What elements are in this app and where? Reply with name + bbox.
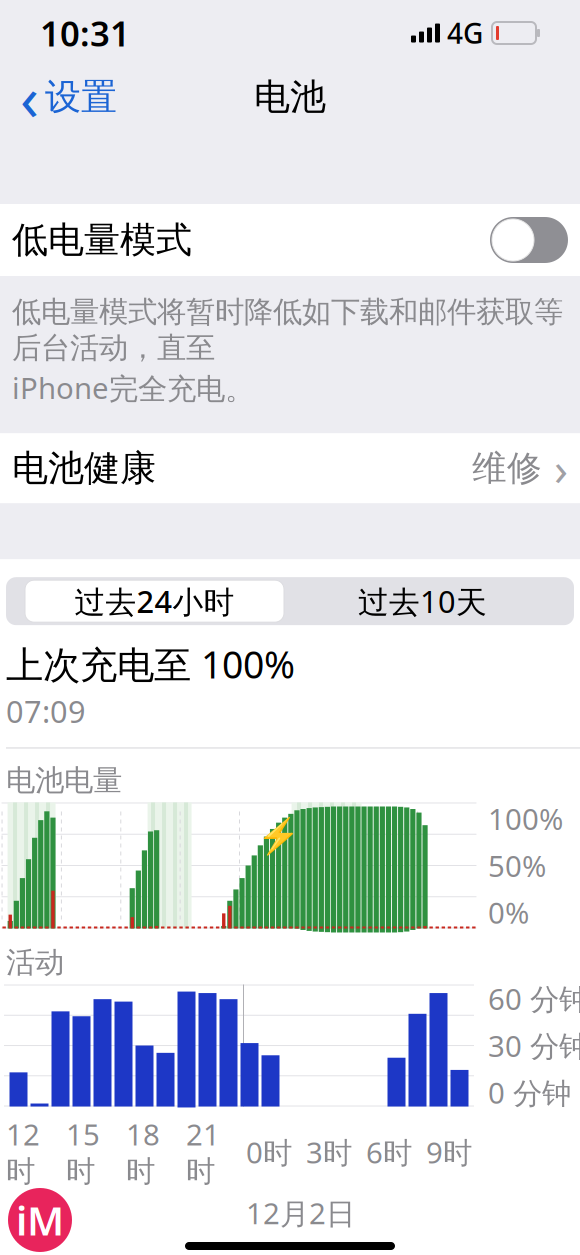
button[interactable]: 低电量模式 xyxy=(0,204,580,276)
staticText: 12时 xyxy=(6,1114,40,1189)
staticText: 0时 xyxy=(246,1132,292,1171)
staticText: 设置 xyxy=(45,75,117,119)
staticText: iM xyxy=(16,1193,64,1246)
staticText: 10:31 xyxy=(40,10,130,56)
staticText: 21时 xyxy=(186,1114,220,1189)
staticText: 低电量模式 xyxy=(12,218,192,262)
staticText: 0% xyxy=(488,893,529,932)
staticText: 12月2日 xyxy=(246,1193,355,1232)
staticText: 过去24小时 xyxy=(74,581,234,621)
staticText: 活动 xyxy=(6,944,64,980)
staticText: 0 分钟 xyxy=(488,1073,571,1112)
staticText: 电池电量 xyxy=(6,762,122,798)
staticText: 低电量模式将暂时降低如下载和邮件获取等后台活动，直至 xyxy=(12,294,563,366)
staticText: 100% xyxy=(488,799,563,838)
button[interactable]: ‹ xyxy=(0,50,117,144)
staticText: 4G xyxy=(447,14,483,52)
button[interactable]: 电池健康 xyxy=(0,433,580,503)
staticText: 30 分钟 xyxy=(488,1026,580,1065)
staticText: 60 分钟 xyxy=(488,979,580,1018)
button[interactable]: 过去10天 xyxy=(287,577,558,625)
button[interactable]: 过去24小时 xyxy=(22,577,287,625)
staticText: 18时 xyxy=(126,1114,160,1189)
staticText: 07:09 xyxy=(6,691,86,731)
staticText: ‹ xyxy=(20,56,39,138)
staticText: 9时 xyxy=(426,1132,472,1171)
staticText: ⚡ xyxy=(257,816,300,856)
staticText: 15时 xyxy=(66,1114,100,1189)
staticText: 上次充电至 100% xyxy=(6,639,295,689)
staticText: 电池健康 xyxy=(12,446,156,490)
staticText: 6时 xyxy=(366,1132,412,1171)
staticText: 电池 xyxy=(254,75,326,119)
staticText: › xyxy=(554,438,568,498)
staticText: iPhone完全充电。 xyxy=(12,368,254,407)
staticText: 3时 xyxy=(306,1132,352,1171)
staticText: 50% xyxy=(488,846,546,885)
staticText: 维修 xyxy=(472,447,542,489)
staticText: 过去10天 xyxy=(358,581,487,621)
